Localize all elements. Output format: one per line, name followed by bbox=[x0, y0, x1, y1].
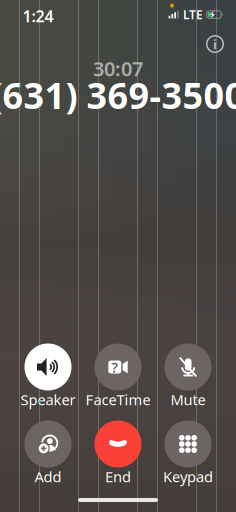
staticText: Mute bbox=[170, 390, 205, 409]
staticText: Speaker bbox=[20, 390, 75, 409]
staticText: Keypad bbox=[163, 467, 213, 486]
staticText: i bbox=[213, 35, 217, 53]
button[interactable]: Mute bbox=[153, 343, 223, 408]
button[interactable]: Add bbox=[13, 420, 83, 485]
staticText: Add bbox=[34, 467, 61, 486]
button[interactable]: Keypad bbox=[153, 420, 223, 485]
staticText: LTE bbox=[183, 7, 203, 22]
staticText: ? bbox=[111, 357, 118, 377]
staticText: (631) 369-3500 bbox=[0, 71, 236, 119]
staticText: 30:07 bbox=[93, 55, 143, 82]
staticText: FaceTime bbox=[85, 390, 150, 409]
staticText: End bbox=[105, 467, 131, 486]
button[interactable]: Call info bbox=[200, 29, 230, 59]
button[interactable]: End bbox=[83, 420, 153, 485]
button[interactable]: Speaker bbox=[13, 343, 83, 408]
staticText: 1:24 bbox=[22, 5, 53, 27]
button[interactable]: ? bbox=[83, 343, 153, 408]
